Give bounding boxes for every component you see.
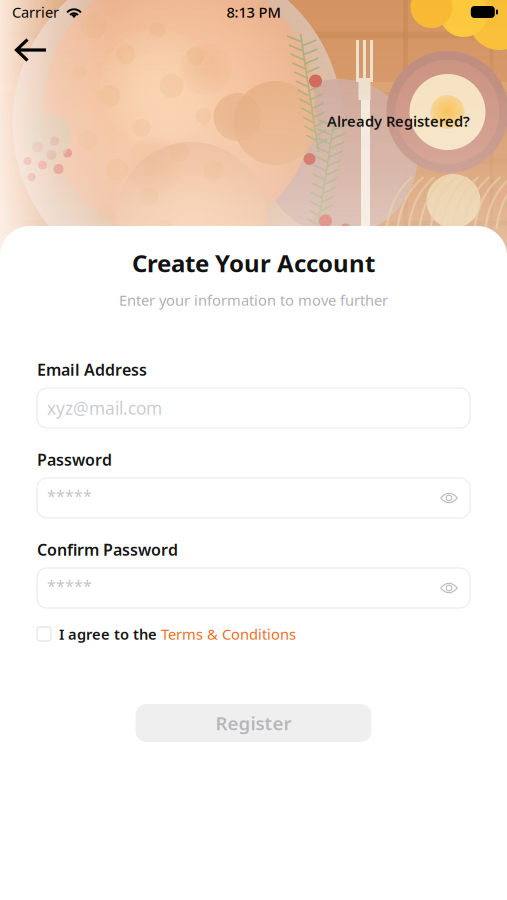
button[interactable]: Show password [440, 581, 458, 595]
staticText: Register [215, 711, 291, 735]
staticText: 8:13 PM [226, 2, 280, 22]
button[interactable]: Register [135, 704, 371, 742]
staticText: ***** [47, 485, 92, 506]
button[interactable]: Show password [440, 491, 458, 505]
staticText: Terms & Conditions [161, 624, 296, 644]
staticText: Password [37, 449, 112, 470]
staticText: xyz@mail.com [47, 396, 162, 419]
staticText: Already Registered? [327, 111, 470, 131]
staticText: Create Your Account [132, 247, 375, 279]
staticText: Email Address [37, 359, 147, 380]
staticText: I agree to the [59, 624, 161, 644]
staticText: Confirm Password [37, 539, 178, 560]
button[interactable]: Already Registered? [327, 110, 470, 132]
staticText: ***** [47, 575, 92, 596]
staticText: Enter your information to move further [119, 290, 388, 310]
staticText: Carrier [12, 2, 59, 22]
button[interactable]: Back [9, 28, 53, 72]
button[interactable]: I agree to the [37, 623, 470, 645]
